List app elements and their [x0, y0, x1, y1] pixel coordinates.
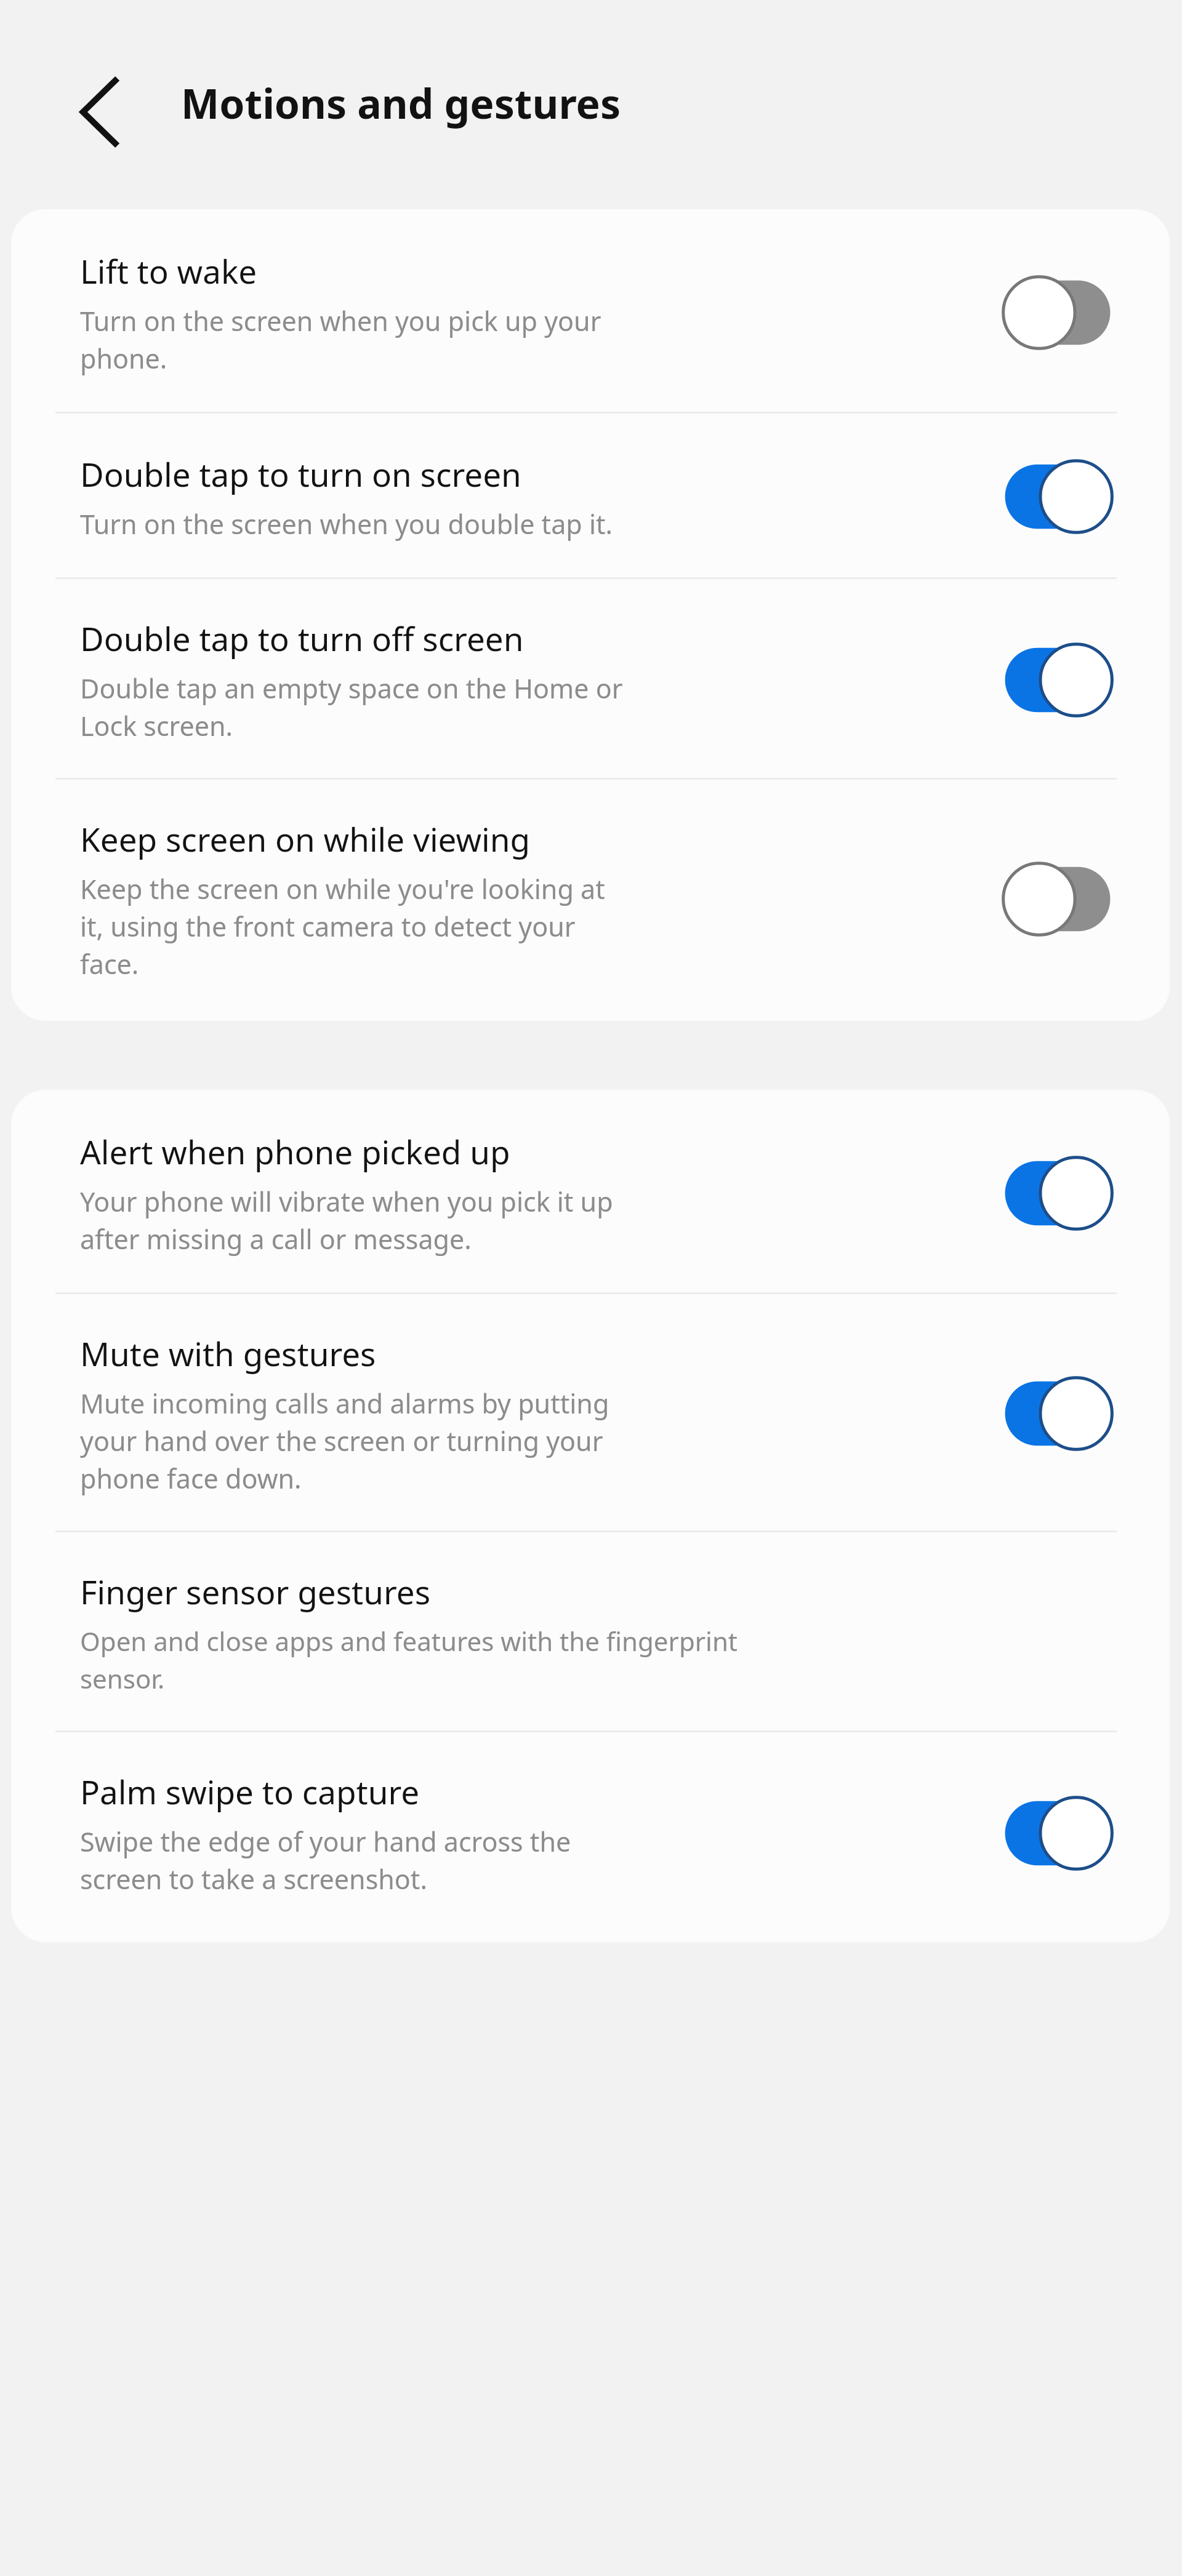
- staticText: Mute with gestures: [80, 1331, 376, 1375]
- button[interactable]: Lift to wake: [11, 209, 1170, 412]
- staticText: Mute incoming calls and alarms by puttin…: [80, 1385, 609, 1496]
- button[interactable]: Finger sensor gestures: [11, 1532, 1170, 1730]
- staticText: Swipe the edge of your hand across the s…: [80, 1823, 571, 1897]
- button[interactable]: Enabled: [1003, 1796, 1112, 1870]
- button[interactable]: Palm swipe to capture: [11, 1732, 1170, 1942]
- button[interactable]: Disabled: [1003, 276, 1112, 350]
- button[interactable]: Enabled: [1003, 460, 1112, 534]
- button[interactable]: Enabled: [1003, 643, 1112, 717]
- staticText: Double tap an empty space on the Home or…: [80, 670, 623, 743]
- staticText: Palm swipe to capture: [80, 1769, 420, 1814]
- staticText: Double tap to turn off screen: [80, 616, 524, 660]
- staticText: Finger sensor gestures: [80, 1569, 431, 1614]
- staticText: Double tap to turn on screen: [80, 452, 521, 496]
- button[interactable]: Enabled: [1003, 1156, 1112, 1230]
- button[interactable]: Double tap to turn off screen: [11, 579, 1170, 778]
- button[interactable]: Enabled: [1003, 1377, 1112, 1450]
- button[interactable]: Mute with gestures: [11, 1294, 1170, 1530]
- staticText: Turn on the screen when you double tap i…: [80, 506, 613, 542]
- button[interactable]: Back: [53, 69, 145, 155]
- staticText: Motions and gestures: [181, 75, 621, 130]
- button[interactable]: Disabled: [1003, 862, 1112, 936]
- button[interactable]: Keep screen on while viewing: [11, 780, 1170, 1021]
- staticText: Keep the screen on while you're looking …: [80, 871, 605, 982]
- staticText: Lift to wake: [80, 249, 257, 293]
- staticText: Turn on the screen when you pick up your…: [80, 303, 601, 376]
- button[interactable]: Alert when phone picked up: [11, 1090, 1170, 1292]
- staticText: Your phone will vibrate when you pick it…: [80, 1183, 613, 1257]
- staticText: Keep screen on while viewing: [80, 817, 531, 861]
- staticText: Open and close apps and features with th…: [80, 1623, 738, 1696]
- button[interactable]: Double tap to turn on screen: [11, 414, 1170, 577]
- staticText: Alert when phone picked up: [80, 1129, 510, 1174]
